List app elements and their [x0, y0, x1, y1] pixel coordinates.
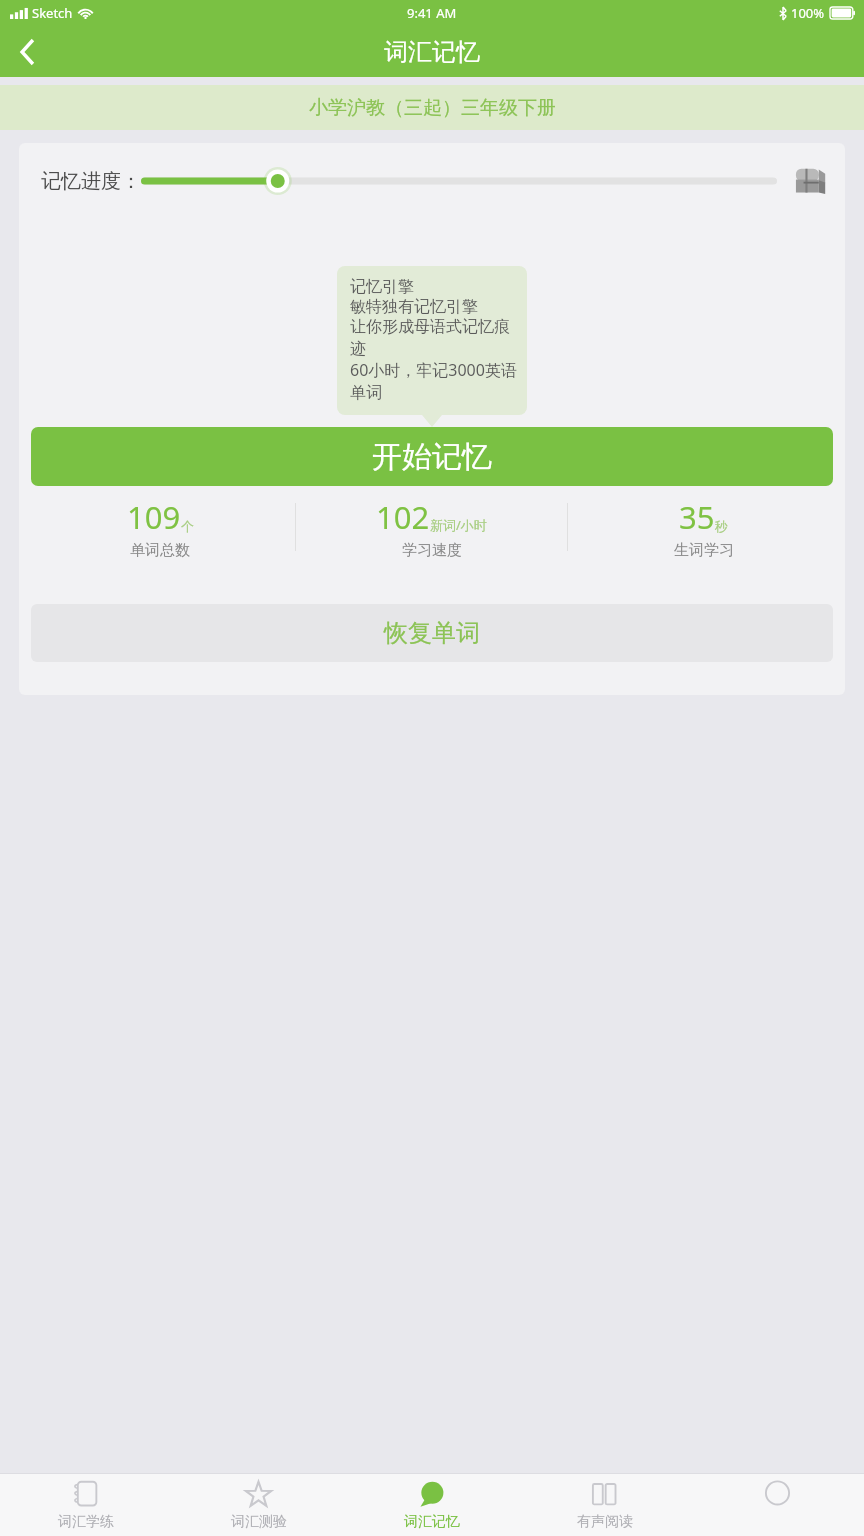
staticText: 单词总数 — [130, 541, 190, 558]
button[interactable]: Back — [0, 26, 54, 77]
button[interactable]: 有声阅读 — [518, 1474, 691, 1536]
staticText: 109 — [127, 496, 181, 538]
staticText: Sketch — [32, 4, 73, 22]
staticText: 开始记忆 — [372, 438, 492, 476]
staticText: 恢复单词 — [384, 618, 480, 648]
staticText: 词汇测验 — [231, 1513, 287, 1531]
staticText: 敏特独有记忆引擎 — [350, 297, 478, 317]
button[interactable]: 词汇学练 — [0, 1474, 172, 1536]
button[interactable]: 开始记忆 — [31, 427, 833, 486]
staticText: 词汇记忆 — [384, 37, 480, 67]
staticText: 小学沪教（三起）三年级下册 — [309, 96, 556, 120]
staticText: 9:41 AM — [407, 4, 457, 22]
staticText: 有声阅读 — [577, 1513, 633, 1531]
staticText: 秒 — [715, 518, 728, 534]
button[interactable]: 恢复单词 — [31, 604, 833, 662]
staticText: 102 — [376, 496, 430, 538]
staticText: 个 — [181, 518, 194, 534]
staticText: 记忆引擎 — [350, 277, 414, 297]
staticText: 新词/小时 — [430, 516, 487, 534]
button[interactable]: 词汇测验 — [172, 1474, 345, 1536]
staticText: 学习速度 — [402, 541, 462, 558]
staticText: 让你形成母语式记忆痕迹 — [350, 317, 517, 359]
staticText: 记忆进度： — [41, 169, 141, 194]
staticText: 35 — [679, 496, 715, 538]
staticText: 词汇学练 — [58, 1513, 114, 1531]
staticText: 生词学习 — [674, 541, 734, 558]
button[interactable]: Profile — [691, 1474, 864, 1536]
staticText: 词汇记忆 — [404, 1513, 460, 1531]
button[interactable]: 词汇记忆 — [345, 1474, 518, 1536]
staticText: 100% — [791, 4, 825, 22]
staticText: 60小时，牢记3000英语单词 — [350, 359, 517, 403]
